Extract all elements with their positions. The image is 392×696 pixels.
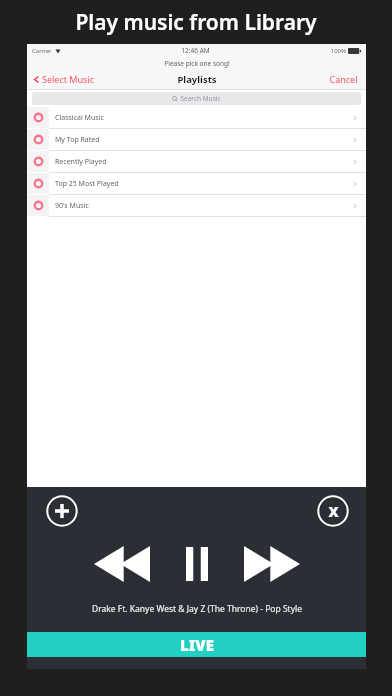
staticText: Play music from Library (75, 8, 317, 37)
button[interactable]: Cancel (321, 70, 366, 88)
staticText: 12:46 AM (181, 46, 210, 55)
button[interactable]: LIVE (27, 632, 366, 657)
staticText: Playlists (177, 73, 217, 86)
button[interactable]: 90's Music (27, 195, 366, 216)
button[interactable]: Search Music (32, 92, 361, 105)
staticText: Cancel (329, 73, 358, 85)
button[interactable]: Recently Played (27, 151, 366, 172)
staticText: Drake Ft. Kanye West & Jay Z (The Throne… (92, 603, 302, 615)
button[interactable]: Classical Music (27, 107, 366, 128)
staticText: Select Music (42, 73, 95, 85)
staticText: Search Music (180, 94, 221, 103)
button[interactable]: My Top Rated (27, 129, 366, 150)
staticText: 90's Music (55, 201, 352, 211)
button[interactable]: Add song (46, 495, 78, 527)
staticText: LIVE (180, 635, 214, 655)
staticText: Carrier (32, 47, 52, 55)
button[interactable]: Select Music (27, 69, 366, 89)
button[interactable]: Rewind (89, 542, 155, 586)
button[interactable]: Top 25 Most Played (27, 173, 366, 194)
staticText: Classical Music (55, 113, 352, 123)
staticText: Please pick one song! (164, 59, 230, 68)
staticText: Recently Played (55, 157, 352, 167)
staticText: X (328, 502, 339, 521)
button[interactable]: Pause (173, 542, 221, 586)
staticText: Top 25 Most Played (55, 179, 352, 189)
staticText: 100% (330, 47, 346, 55)
staticText: My Top Rated (55, 135, 352, 145)
button[interactable]: Close (317, 495, 349, 527)
button[interactable]: Fast forward (239, 542, 305, 586)
